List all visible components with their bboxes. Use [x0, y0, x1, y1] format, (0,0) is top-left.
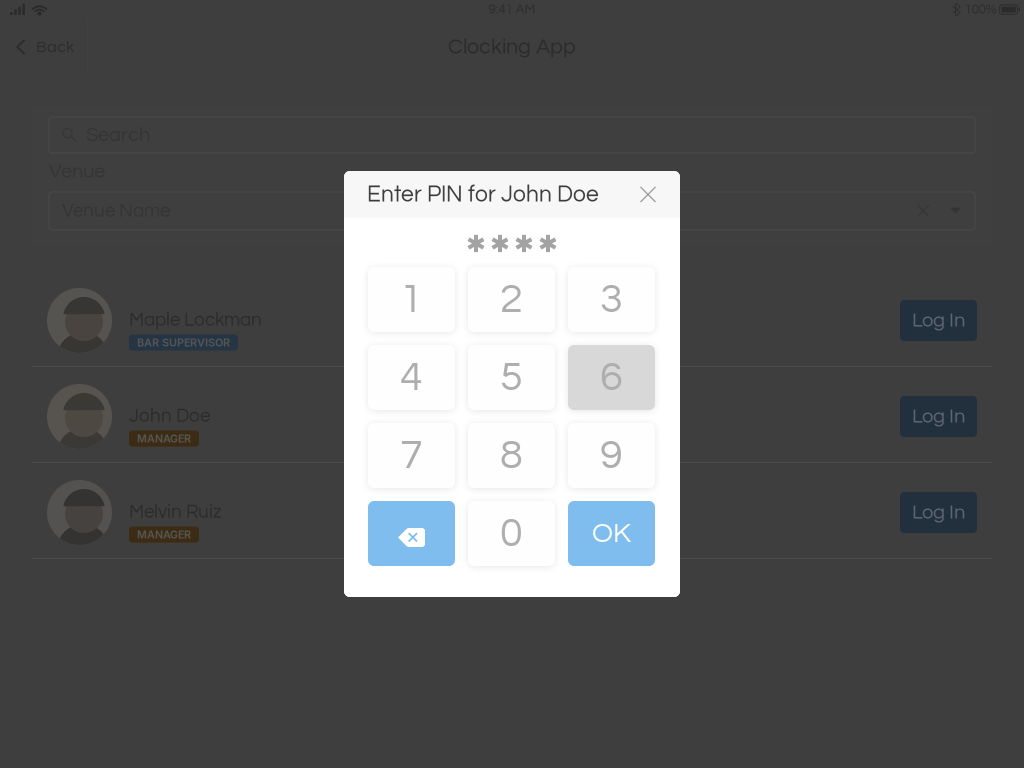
button[interactable]: 1 — [368, 267, 455, 332]
staticText: Search — [86, 125, 150, 145]
staticText: Back — [36, 39, 74, 55]
staticText: 2 — [500, 278, 523, 321]
staticText: Venue — [49, 161, 105, 182]
staticText: Melvin Ruiz — [129, 502, 222, 522]
button[interactable]: Log In — [900, 300, 977, 341]
button[interactable]: Delete — [368, 501, 455, 566]
button[interactable]: 4 — [368, 345, 455, 410]
button[interactable]: 3 — [568, 267, 655, 332]
staticText: Maple Lockman — [129, 310, 262, 330]
staticText: 0 — [500, 512, 523, 555]
staticText: 6 — [600, 356, 623, 399]
button[interactable]: Log In — [900, 492, 977, 533]
button[interactable]: 5 — [468, 345, 555, 410]
staticText: 7 — [400, 434, 423, 477]
staticText: Log In — [912, 310, 965, 331]
staticText: 100% — [965, 3, 997, 16]
staticText: 8 — [500, 434, 523, 477]
staticText: BAR SUPERVISOR — [137, 336, 230, 349]
staticText: John Doe — [129, 406, 210, 426]
staticText: Log In — [912, 406, 965, 427]
button[interactable]: 8 — [468, 423, 555, 488]
staticText: Log In — [912, 502, 965, 523]
staticText: 1 — [400, 278, 423, 321]
staticText: 3 — [600, 278, 623, 321]
staticText: OK — [592, 519, 631, 548]
staticText: MANAGER — [137, 432, 191, 445]
staticText: MANAGER — [137, 528, 191, 541]
button[interactable]: 6 — [568, 345, 655, 410]
button[interactable]: 0 — [468, 501, 555, 566]
staticText: 5 — [500, 356, 523, 399]
button[interactable]: 2 — [468, 267, 555, 332]
button[interactable]: 7 — [368, 423, 455, 488]
staticText: Venue Name — [62, 201, 170, 221]
staticText: 4 — [400, 356, 423, 399]
button[interactable]: 9 — [568, 423, 655, 488]
button[interactable]: Maple Lockman — [0, 271, 1024, 366]
button[interactable]: Log In — [900, 396, 977, 437]
staticText: Enter PIN for John Doe — [367, 183, 599, 206]
button[interactable]: Melvin Ruiz — [0, 463, 1024, 558]
staticText: 9 — [600, 434, 623, 477]
button[interactable]: OK — [568, 501, 655, 566]
staticText: 9:41 AM — [488, 3, 535, 16]
button[interactable]: John Doe — [0, 367, 1024, 462]
staticText: Clocking App — [448, 36, 576, 58]
button[interactable]: Close — [632, 178, 664, 210]
